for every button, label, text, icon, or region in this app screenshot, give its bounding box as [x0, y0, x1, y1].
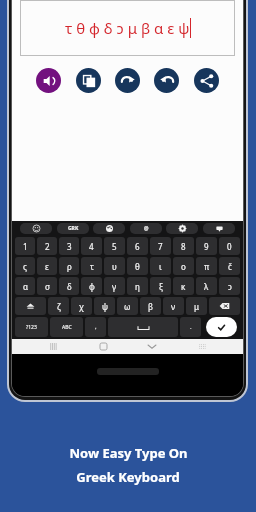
button[interactable]: ψ [94, 297, 115, 315]
button[interactable]: 7 [150, 237, 171, 255]
button[interactable]: Emoji [20, 223, 52, 234]
button[interactable]: Backspace [209, 297, 240, 315]
button[interactable]: θ [127, 257, 148, 275]
staticText: ɔ [228, 281, 232, 292]
staticText: 1 [23, 241, 28, 252]
staticText: 4 [89, 241, 94, 252]
staticText: ν [171, 301, 176, 312]
staticText: α [23, 281, 28, 292]
button[interactable]: Keyboard switch [193, 339, 211, 354]
staticText: ξ [159, 281, 163, 292]
staticText: υ [112, 261, 117, 272]
button[interactable]: Settings [166, 223, 198, 234]
button[interactable]: @ [130, 223, 162, 234]
staticText: β [148, 301, 153, 312]
button[interactable]: 8 [173, 237, 194, 255]
button[interactable]: λ [196, 277, 217, 295]
button[interactable]: μ [186, 297, 207, 315]
button[interactable]: ο [173, 257, 194, 275]
button[interactable]: Share [194, 68, 219, 93]
button[interactable]: η [127, 277, 148, 295]
staticText: ζ [57, 301, 61, 312]
button[interactable]: τ θ φ δ ɔ μ β α ε ψ [20, 0, 235, 56]
button[interactable]: ɔ [219, 277, 240, 295]
staticText: μ [194, 301, 200, 312]
staticText: φ [89, 281, 95, 292]
button[interactable] [108, 317, 178, 337]
staticText: ABC [62, 324, 72, 331]
button[interactable]: ABC [50, 317, 83, 337]
button[interactable]: 4 [81, 237, 102, 255]
staticText: 8 [181, 241, 186, 252]
staticText: ψ [102, 301, 108, 312]
staticText: σ [45, 281, 50, 292]
button[interactable]: σ [37, 277, 57, 295]
staticText: 3 [67, 241, 72, 252]
staticText: η [135, 281, 140, 292]
staticText: . [190, 323, 192, 331]
staticText: κ [181, 281, 186, 292]
button[interactable]: Theme [93, 223, 125, 234]
button[interactable]: ν [163, 297, 184, 315]
button[interactable]: Copy [76, 68, 101, 93]
staticText: 7 [158, 241, 163, 252]
button[interactable]: κ [173, 277, 194, 295]
button[interactable]: Redo [115, 68, 140, 93]
button[interactable]: υ [104, 257, 125, 275]
button[interactable]: Recents [44, 339, 62, 354]
button[interactable]: ι [150, 257, 171, 275]
staticText: γ [112, 281, 117, 292]
button[interactable]: č [219, 257, 240, 275]
button[interactable]: Back [143, 339, 161, 354]
staticText: Now Easy Type On [69, 444, 188, 462]
button[interactable]: τ [81, 257, 102, 275]
button[interactable]: ω [117, 297, 138, 315]
staticText: λ [204, 281, 209, 292]
staticText: τ θ φ δ ɔ μ β α ε ψ [65, 18, 190, 38]
button[interactable]: Speak [36, 68, 61, 93]
button[interactable]: 1 [15, 237, 35, 255]
button[interactable]: φ [81, 277, 102, 295]
button[interactable]: δ [59, 277, 79, 295]
staticText: GRK [68, 225, 79, 232]
staticText: ?123 [26, 324, 37, 331]
button[interactable]: GRK [57, 223, 89, 234]
button[interactable]: χ [71, 297, 92, 315]
staticText: π [204, 261, 210, 272]
button[interactable]: , [85, 317, 106, 337]
staticText: Greek Keyboard [76, 468, 180, 486]
staticText: 9 [204, 241, 209, 252]
button[interactable]: ρ [59, 257, 79, 275]
button[interactable]: 0 [219, 237, 240, 255]
button[interactable]: ξ [150, 277, 171, 295]
button[interactable]: π [196, 257, 217, 275]
button[interactable]: Enter [206, 317, 237, 337]
staticText: ε [45, 261, 49, 272]
button[interactable]: ζ [48, 297, 69, 315]
button[interactable]: Undo [154, 68, 179, 93]
staticText: , [95, 323, 97, 331]
button[interactable]: α [15, 277, 35, 295]
staticText: 5 [112, 241, 117, 252]
button[interactable]: . [180, 317, 201, 337]
staticText: ι [159, 261, 162, 272]
staticText: @ [144, 225, 149, 232]
button[interactable]: Clipboard [203, 223, 235, 234]
button[interactable]: ς [15, 257, 35, 275]
button[interactable]: 3 [59, 237, 79, 255]
button[interactable]: β [140, 297, 161, 315]
button[interactable]: ε [37, 257, 57, 275]
button[interactable]: Home [94, 339, 112, 354]
staticText: č [228, 261, 232, 272]
button[interactable]: ?123 [15, 317, 48, 337]
staticText: χ [79, 301, 84, 312]
staticText: τ [90, 261, 94, 272]
button[interactable]: 2 [37, 237, 57, 255]
button[interactable]: 9 [196, 237, 217, 255]
button[interactable]: 6 [127, 237, 148, 255]
staticText: 2 [45, 241, 50, 252]
button[interactable]: Shift [15, 297, 46, 315]
button[interactable]: γ [104, 277, 125, 295]
staticText: ο [181, 261, 186, 272]
button[interactable]: 5 [104, 237, 125, 255]
